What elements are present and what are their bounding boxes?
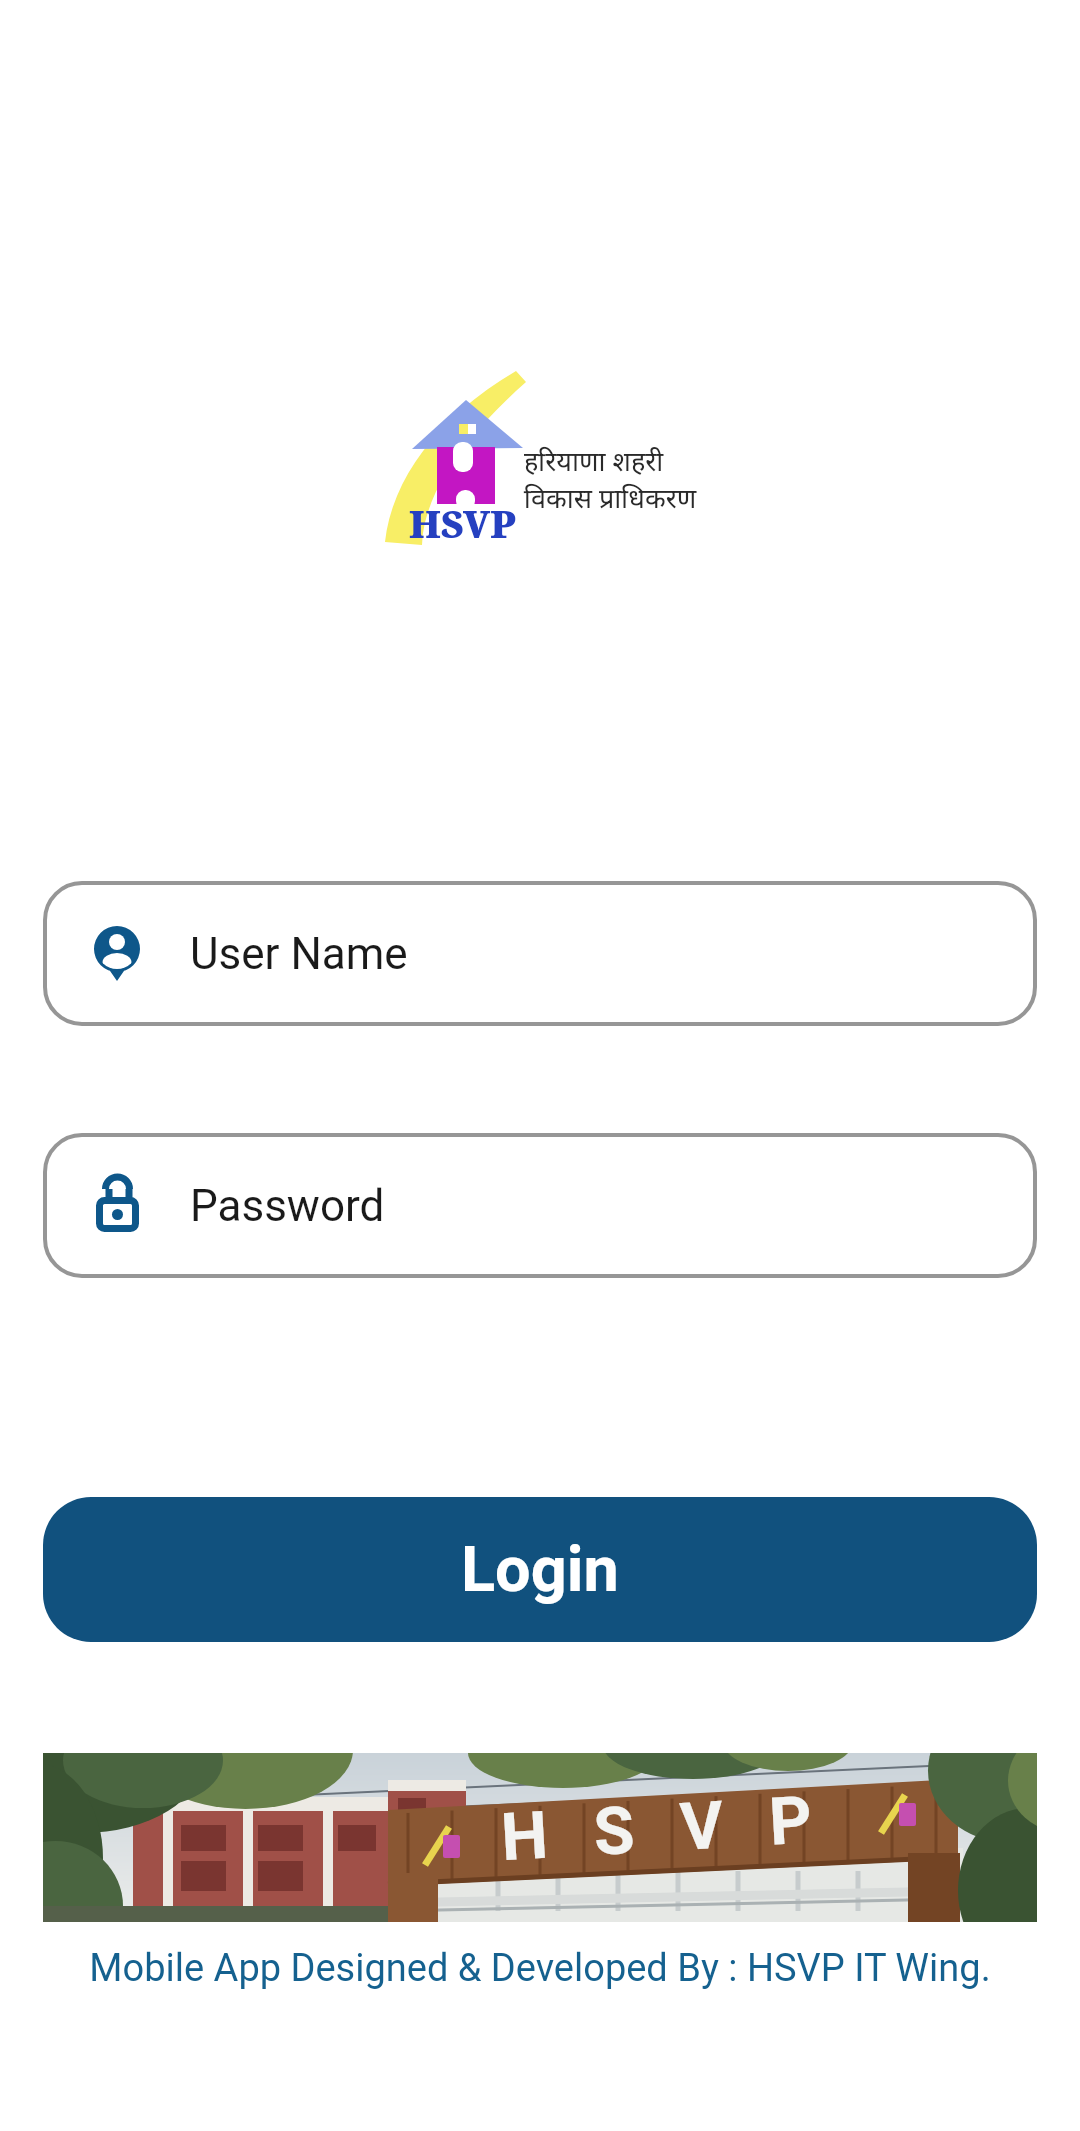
staticText: HSVP <box>409 497 516 549</box>
staticText: Login <box>461 1533 619 1607</box>
staticText: Mobile App Designed & Developed By : HSV… <box>0 1946 1080 1991</box>
button[interactable]: User Name <box>43 881 1037 1026</box>
button[interactable]: Password <box>43 1133 1037 1278</box>
button[interactable]: Login <box>43 1497 1037 1642</box>
staticText: विकास प्राधिकरण <box>524 479 697 516</box>
staticText: User Name <box>190 928 408 980</box>
staticText: HSVP <box>499 1779 860 1876</box>
staticText: हरियाणा शहरी <box>524 442 664 479</box>
staticText: Password <box>190 1180 385 1232</box>
